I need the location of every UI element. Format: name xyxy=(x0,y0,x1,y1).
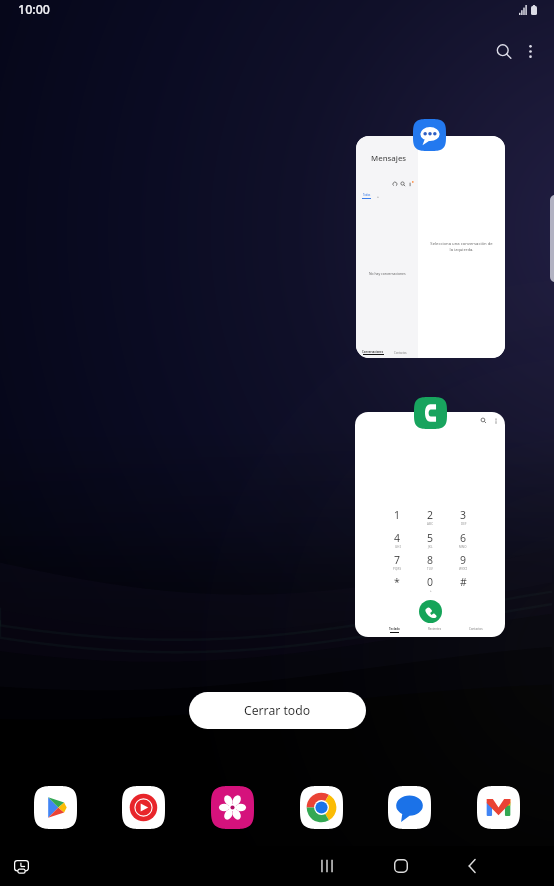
button[interactable]: Gallery xyxy=(209,784,255,830)
button[interactable]: Home xyxy=(375,849,427,883)
staticText: Contactos xyxy=(394,351,407,355)
button[interactable]: 7 xyxy=(382,553,412,573)
button[interactable]: Gmail xyxy=(475,784,521,830)
button[interactable]: 8 xyxy=(415,553,445,573)
button[interactable]: Chrome xyxy=(298,784,344,830)
button[interactable]: # xyxy=(448,575,478,595)
staticText: 1 xyxy=(394,508,401,522)
staticText: # xyxy=(460,575,467,589)
button[interactable]: 1 xyxy=(355,412,505,637)
button[interactable]: YouTube Music xyxy=(120,784,166,830)
staticText: ABC xyxy=(427,522,434,526)
staticText: 8 xyxy=(427,553,434,567)
staticText: 2 xyxy=(427,508,434,522)
staticText: 7 xyxy=(394,553,401,567)
button[interactable]: Pin window xyxy=(1,848,41,884)
staticText: Selecciona una conversación de la izquie… xyxy=(430,241,493,253)
button[interactable]: 1 xyxy=(382,508,412,528)
staticText: 5 xyxy=(427,531,434,545)
staticText: + xyxy=(430,589,432,593)
button[interactable]: Search xyxy=(485,33,522,70)
staticText: Todos xyxy=(363,193,371,197)
staticText: TUV xyxy=(427,567,434,571)
staticText: 10:00 xyxy=(18,1,51,18)
staticText: Conversaciones xyxy=(362,350,384,354)
button[interactable]: 6 xyxy=(448,531,478,551)
button[interactable]: * xyxy=(382,575,412,595)
button[interactable]: Back xyxy=(446,849,498,883)
button[interactable]: Play Store xyxy=(32,784,78,830)
staticText: 0 xyxy=(427,575,434,589)
staticText: WXYZ xyxy=(459,567,468,571)
staticText: Contactos xyxy=(469,627,483,631)
button[interactable]: 0 xyxy=(415,575,445,595)
staticText: 4 xyxy=(394,531,401,545)
button[interactable]: Messages xyxy=(386,784,432,830)
staticText: MNO xyxy=(459,545,467,549)
button[interactable]: Recents xyxy=(301,849,353,883)
staticText: GHI xyxy=(395,545,401,549)
staticText: Mensajes xyxy=(371,153,407,164)
button[interactable]: 3 xyxy=(448,508,478,528)
button[interactable]: 9 xyxy=(448,553,478,573)
staticText: No hay conversaciones xyxy=(369,271,406,276)
staticText: * xyxy=(394,575,400,589)
staticText: PQRS xyxy=(393,567,402,571)
button[interactable]: More options xyxy=(512,33,549,70)
staticText: Teclado xyxy=(389,627,400,631)
button[interactable]: Mensajes xyxy=(356,136,505,358)
button[interactable]: 2 xyxy=(415,508,445,528)
staticText: 3 xyxy=(460,508,467,522)
staticText: + xyxy=(377,194,379,199)
staticText: 6 xyxy=(460,531,467,545)
button[interactable]: Call xyxy=(419,600,442,623)
button[interactable]: 5 xyxy=(415,531,445,551)
staticText: Recientes xyxy=(428,627,442,631)
staticText: Cerrar todo xyxy=(244,702,311,719)
staticText: 9 xyxy=(460,553,467,567)
staticText: DEF xyxy=(461,522,467,526)
staticText: JKL xyxy=(428,545,433,549)
button[interactable]: 4 xyxy=(382,531,412,551)
button[interactable]: Cerrar todo xyxy=(189,692,366,729)
